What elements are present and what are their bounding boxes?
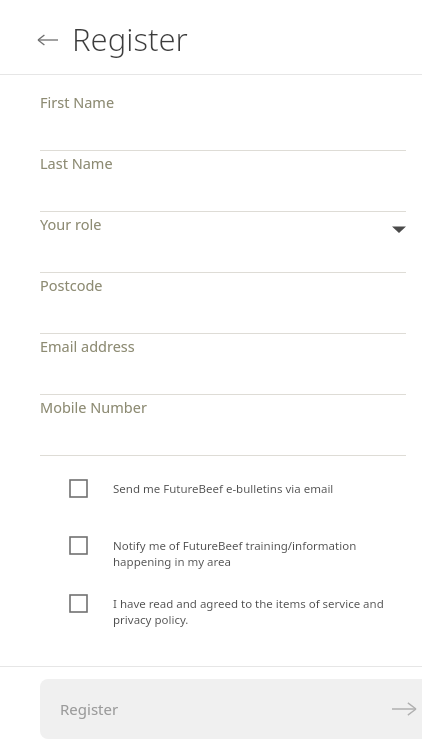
- staticText: Notify me of FutureBeef training/informa…: [113, 538, 357, 569]
- staticText: Last Name: [40, 153, 113, 173]
- staticText: Register: [72, 18, 188, 60]
- button[interactable]: Send me FutureBeef e-bulletins via email: [40, 480, 406, 535]
- button[interactable]: I have read and agreed to the items of s…: [40, 593, 406, 643]
- button[interactable]: Your role: [40, 212, 406, 273]
- staticText: First Name: [40, 92, 115, 112]
- button[interactable]: Notify me of FutureBeef training/informa…: [40, 535, 406, 593]
- button[interactable]: First Name: [40, 90, 406, 151]
- button[interactable]: Mobile Number: [40, 395, 406, 456]
- staticText: Send me FutureBeef e-bulletins via email: [113, 481, 334, 497]
- button[interactable]: Register: [40, 679, 422, 739]
- staticText: Your role: [40, 214, 102, 234]
- staticText: Postcode: [40, 275, 103, 295]
- staticText: Email address: [40, 336, 135, 356]
- button[interactable]: Last Name: [40, 151, 406, 212]
- staticText: Register: [60, 699, 392, 719]
- button[interactable]: Postcode: [40, 273, 406, 334]
- button[interactable]: Email address: [40, 334, 406, 395]
- staticText: I have read and agreed to the items of s…: [113, 596, 384, 627]
- staticText: Mobile Number: [40, 397, 147, 417]
- button[interactable]: Back: [30, 22, 66, 58]
